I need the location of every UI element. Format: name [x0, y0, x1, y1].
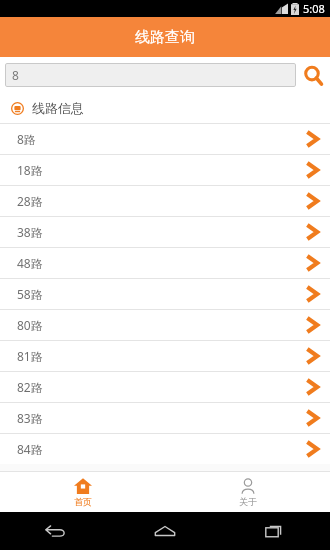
staticText: 81路 [17, 348, 306, 364]
button[interactable]: Home [110, 512, 220, 550]
button[interactable]: 80路 [0, 310, 330, 340]
button[interactable]: 8路 [0, 124, 330, 154]
button[interactable]: 83路 [0, 403, 330, 433]
staticText: 58路 [17, 286, 306, 302]
staticText: 28路 [17, 193, 306, 209]
staticText: 线路信息 [32, 100, 84, 116]
staticText: 48路 [17, 255, 306, 271]
staticText: 5:08 [303, 1, 325, 16]
button[interactable]: Search [296, 57, 330, 93]
staticText: 首页 [74, 496, 92, 507]
button[interactable]: 84路 [0, 434, 330, 464]
staticText: 关于 [239, 496, 257, 507]
staticText: 80路 [17, 317, 306, 333]
button[interactable]: 82路 [0, 372, 330, 402]
button[interactable]: 首页 [0, 472, 165, 512]
button[interactable]: Back [0, 512, 110, 550]
button[interactable]: 8 [5, 63, 296, 87]
staticText: 38路 [17, 224, 306, 240]
staticText: 83路 [17, 410, 306, 426]
staticText: 线路查询 [135, 28, 195, 47]
staticText: 8 [12, 67, 19, 83]
staticText: 8路 [17, 131, 306, 147]
button[interactable]: 28路 [0, 186, 330, 216]
button[interactable]: Recents [220, 512, 330, 550]
button[interactable]: 58路 [0, 279, 330, 309]
button[interactable]: 关于 [165, 472, 330, 512]
button[interactable]: 18路 [0, 155, 330, 185]
button[interactable]: 48路 [0, 248, 330, 278]
staticText: 18路 [17, 162, 306, 178]
button[interactable]: 81路 [0, 341, 330, 371]
staticText: 82路 [17, 379, 306, 395]
button[interactable]: 38路 [0, 217, 330, 247]
staticText: 84路 [17, 441, 306, 457]
